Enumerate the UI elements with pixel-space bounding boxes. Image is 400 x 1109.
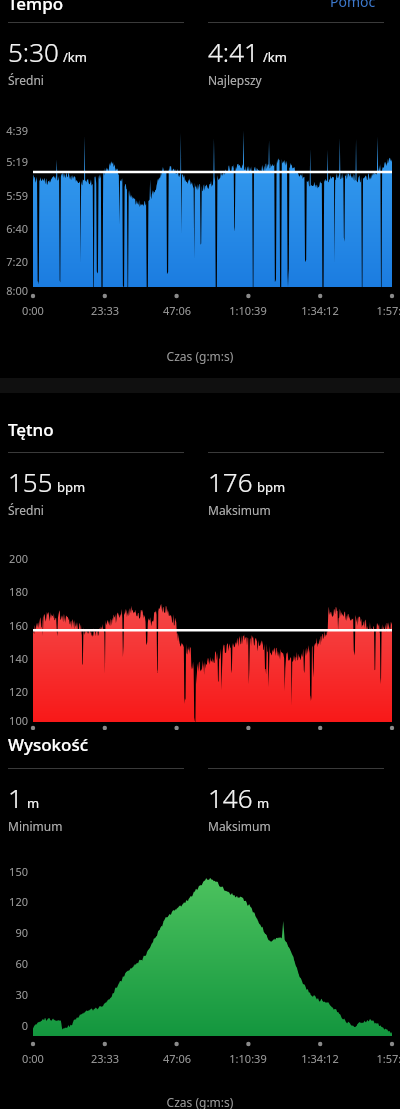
staticText: 47:06 — [147, 1051, 207, 1066]
button[interactable]: 176 — [208, 452, 392, 518]
staticText: 155 — [8, 464, 53, 499]
staticText: 8:00 — [0, 283, 28, 298]
button[interactable]: 5:30 — [8, 22, 192, 88]
staticText: 60 — [0, 956, 28, 971]
staticText: 1:34:12 — [290, 303, 350, 318]
staticText: 180 — [0, 584, 28, 599]
staticText: 1:10:39 — [218, 1051, 278, 1066]
staticText: 146 — [208, 780, 253, 815]
button[interactable]: Tętno — [8, 418, 54, 441]
staticText: 5:59 — [0, 188, 28, 203]
staticText: 150 — [0, 864, 28, 879]
staticText: Minimum — [8, 818, 63, 834]
staticText: Średni — [8, 502, 44, 518]
staticText: 140 — [0, 651, 28, 666]
staticText: 120 — [0, 684, 28, 699]
button[interactable]: 4:41 — [208, 22, 392, 88]
button[interactable]: Tempo — [8, 0, 64, 15]
staticText: 90 — [0, 925, 28, 940]
staticText: 5:30 — [8, 34, 59, 69]
staticText: 176 — [208, 464, 253, 499]
staticText: 47:06 — [147, 303, 207, 318]
staticText: 0:00 — [3, 303, 63, 318]
staticText: 0:00 — [3, 735, 63, 750]
staticText: m — [257, 794, 270, 812]
staticText: m — [27, 794, 40, 812]
button[interactable]: 146 — [208, 768, 392, 834]
staticText: 5:19 — [0, 154, 28, 169]
staticText: 200 — [0, 551, 28, 566]
staticText: 6:40 — [0, 221, 28, 236]
staticText: 7:20 — [0, 254, 28, 269]
staticText: Maksimum — [208, 818, 271, 834]
staticText: 0:00 — [3, 1051, 63, 1066]
staticText: 1:57:4 — [362, 303, 400, 318]
button[interactable]: Wysokość — [8, 733, 89, 756]
staticText: /km — [63, 48, 87, 66]
staticText: bpm — [57, 478, 86, 496]
staticText: Średni — [8, 72, 44, 88]
staticText: Czas (g:m:s) — [0, 348, 400, 364]
staticText: 100 — [0, 713, 28, 728]
button[interactable]: 155 — [8, 452, 192, 518]
staticText: Najlepszy — [208, 72, 262, 88]
staticText: bpm — [257, 478, 286, 496]
staticText: 23:33 — [75, 303, 135, 318]
staticText: 160 — [0, 618, 28, 633]
staticText: 23:33 — [75, 1051, 135, 1066]
staticText: 1:57:4 — [362, 1051, 400, 1066]
staticText: 4:41 — [208, 34, 259, 69]
staticText: Maksimum — [208, 502, 271, 518]
staticText: 4:39 — [0, 123, 28, 138]
staticText: 23:33 — [75, 735, 135, 750]
staticText: Pomoc — [330, 0, 376, 11]
staticText: 30 — [0, 987, 28, 1002]
staticText: /km — [263, 48, 287, 66]
staticText: Czas (g:m:s) — [0, 1094, 400, 1109]
staticText: 1 — [8, 780, 23, 815]
staticText: 120 — [0, 894, 28, 909]
staticText: 0 — [0, 1018, 28, 1033]
staticText: 1:34:12 — [290, 1051, 350, 1066]
button[interactable]: 1 — [8, 768, 192, 834]
staticText: 1:10:39 — [218, 303, 278, 318]
button[interactable]: Pokaż więcej — [330, 0, 376, 11]
